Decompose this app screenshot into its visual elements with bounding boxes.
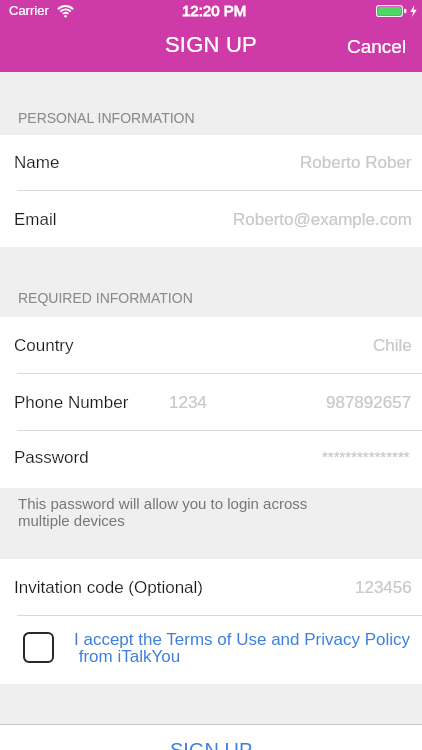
staticText: Country	[14, 336, 74, 355]
staticText: Password	[14, 448, 89, 467]
staticText: REQUIRED INFORMATION	[18, 290, 193, 306]
button[interactable]: Cancel	[332, 28, 422, 65]
staticText: Chile	[373, 336, 412, 355]
staticText: 1234	[169, 393, 207, 412]
staticText: Name	[14, 153, 60, 172]
staticText: ***************	[322, 448, 410, 465]
staticText: Roberto Rober	[300, 153, 412, 172]
button[interactable]: Accept terms checkbox	[0, 616, 422, 684]
other: Accept terms checkbox	[23, 632, 54, 663]
staticText: Carrier	[9, 3, 49, 18]
staticText: I accept the Terms of Use and Privacy Po…	[74, 630, 411, 665]
staticText: SIGN UP	[165, 32, 257, 57]
button[interactable]: SIGN UP	[0, 725, 422, 750]
staticText: Roberto@example.com	[233, 210, 412, 229]
staticText: Invitation code (Optional)	[14, 578, 203, 597]
staticText: Phone Number	[14, 393, 129, 412]
button[interactable]: Invitation code (Optional)	[0, 559, 422, 616]
button[interactable]: Name	[0, 135, 422, 191]
button[interactable]: Country	[0, 317, 422, 374]
staticText: SIGN UP	[170, 739, 253, 750]
button[interactable]: Email	[0, 191, 422, 247]
button[interactable]: Phone Number	[0, 374, 422, 431]
staticText: 123456	[355, 578, 412, 597]
staticText: 12:20 PM	[182, 2, 247, 19]
staticText: 987892657	[326, 393, 412, 412]
button[interactable]: Password	[0, 431, 422, 488]
staticText: PERSONAL INFORMATION	[18, 110, 195, 126]
staticText: This password will allow you to login ac…	[18, 495, 308, 529]
staticText: Email	[14, 210, 57, 229]
